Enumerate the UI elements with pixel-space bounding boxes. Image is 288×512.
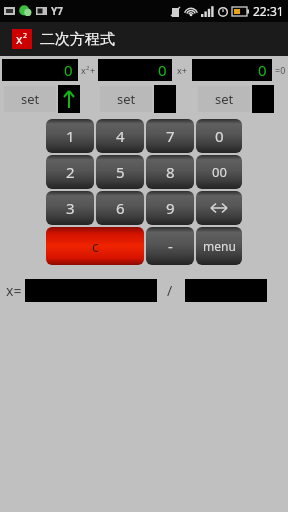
staticText: 二次方程式 — [40, 30, 115, 49]
staticText: 2 — [86, 64, 90, 72]
button[interactable]: 3 — [46, 191, 94, 225]
staticText: Y7 — [51, 4, 63, 18]
button[interactable]: Swap — [196, 191, 242, 225]
button[interactable]: set — [100, 86, 152, 112]
staticText: + — [90, 64, 96, 76]
staticText: x — [81, 64, 86, 76]
button[interactable]: set — [4, 86, 56, 112]
button[interactable]: set — [198, 86, 250, 112]
staticText: 00 — [212, 163, 227, 181]
button[interactable]: 1 — [46, 119, 94, 153]
button[interactable]: 0 — [192, 59, 272, 81]
staticText: 2 — [23, 31, 28, 41]
button[interactable]: Select field — [58, 85, 80, 113]
button[interactable]: 0 — [196, 119, 242, 153]
button[interactable]: - — [146, 227, 194, 265]
button[interactable]: 6 — [96, 191, 144, 225]
staticText: 3 — [66, 198, 75, 218]
staticText: 22:31 — [253, 3, 284, 19]
staticText: - — [168, 236, 173, 256]
button[interactable]: 9 — [146, 191, 194, 225]
button[interactable]: 00 — [196, 155, 242, 189]
staticText: 6 — [116, 198, 125, 218]
button[interactable]: 0 — [98, 59, 172, 81]
staticText: x= — [6, 281, 22, 300]
staticText: x+ — [177, 64, 187, 76]
staticText: 0 — [215, 126, 224, 146]
button[interactable]: 2 — [46, 155, 94, 189]
button[interactable]: 0 — [2, 59, 78, 81]
staticText: 0 — [258, 60, 267, 80]
staticText: 5 — [116, 162, 125, 182]
staticText: 7 — [166, 126, 175, 146]
staticText: / — [167, 281, 173, 300]
staticText: 0 — [64, 60, 73, 80]
staticText: =0 — [275, 64, 286, 76]
staticText: 9 — [166, 198, 175, 218]
button[interactable]: 4 — [96, 119, 144, 153]
staticText: 8 — [166, 162, 175, 182]
staticText: 1 — [66, 126, 75, 146]
button[interactable]: 7 — [146, 119, 194, 153]
staticText: menu — [203, 238, 236, 254]
button[interactable]: c — [46, 227, 144, 265]
staticText: 4 — [116, 126, 125, 146]
staticText: 0 — [158, 60, 167, 80]
button[interactable]: menu — [196, 227, 242, 265]
staticText: c — [92, 237, 99, 256]
staticText: set — [215, 90, 234, 108]
button[interactable]: 8 — [146, 155, 194, 189]
staticText: set — [117, 90, 136, 108]
staticText: x — [16, 31, 23, 47]
staticText: 2 — [66, 162, 75, 182]
button[interactable]: 5 — [96, 155, 144, 189]
staticText: set — [21, 90, 40, 108]
